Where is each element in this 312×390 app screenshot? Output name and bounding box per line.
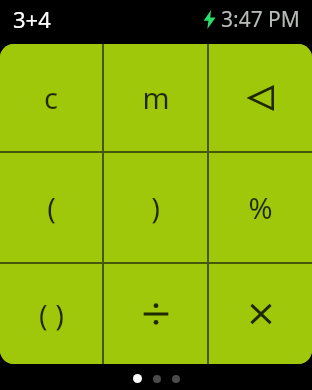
staticText: 3+4	[13, 4, 51, 34]
button[interactable]: Divide	[104, 264, 207, 364]
button[interactable]: ( )	[0, 264, 102, 364]
staticText: c	[44, 78, 58, 117]
button[interactable]: %	[209, 153, 312, 262]
staticText: 3:47 PM	[221, 5, 300, 34]
button[interactable]: )	[104, 153, 207, 262]
button[interactable]: c	[0, 44, 102, 151]
staticText: (	[47, 188, 56, 227]
button[interactable]: Multiply	[209, 264, 312, 364]
staticText: %	[248, 188, 273, 227]
staticText: )	[151, 188, 160, 227]
button[interactable]: m	[104, 44, 207, 151]
button[interactable]: Backspace	[209, 44, 312, 151]
button[interactable]: (	[0, 153, 102, 262]
staticText: ( )	[39, 295, 64, 334]
staticText: m	[142, 78, 170, 117]
